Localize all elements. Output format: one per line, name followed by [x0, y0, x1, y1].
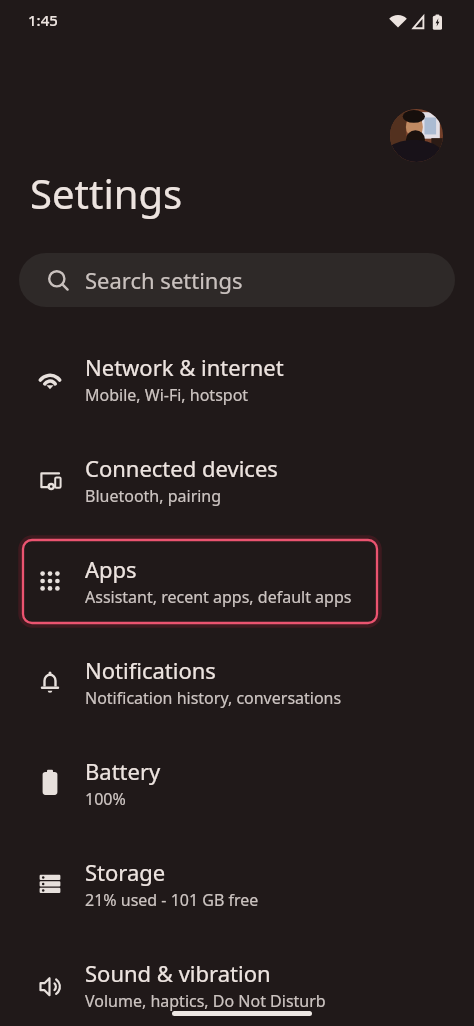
- staticText: Network & internet: [85, 352, 284, 382]
- staticText: Settings: [30, 166, 183, 220]
- button[interactable]: Apps: [0, 530, 474, 631]
- staticText: Search settings: [85, 265, 243, 295]
- staticText: Bluetooth, pairing: [85, 485, 222, 507]
- staticText: 21% used - 101 GB free: [85, 889, 259, 911]
- button[interactable]: Sound & vibration: [0, 934, 474, 1026]
- button[interactable]: Search settings: [19, 253, 455, 307]
- staticText: Battery: [85, 756, 161, 786]
- button[interactable]: Storage: [0, 833, 474, 934]
- button[interactable]: [390, 109, 443, 162]
- staticText: Assistant, recent apps, default apps: [85, 586, 352, 608]
- button[interactable]: Connected devices: [0, 429, 474, 530]
- staticText: Notification history, conversations: [85, 687, 342, 709]
- staticText: Storage: [85, 857, 166, 887]
- staticText: Mobile, Wi-Fi, hotspot: [85, 384, 249, 406]
- button[interactable]: Network & internet: [0, 328, 474, 429]
- staticText: Apps: [85, 554, 137, 584]
- button[interactable]: Notifications: [0, 631, 474, 732]
- staticText: 1:45: [28, 10, 58, 30]
- staticText: Notifications: [85, 655, 216, 685]
- staticText: 100%: [85, 788, 126, 810]
- staticText: Sound & vibration: [85, 958, 271, 988]
- button[interactable]: Battery: [0, 732, 474, 833]
- staticText: Connected devices: [85, 453, 278, 483]
- staticText: Volume, haptics, Do Not Disturb: [85, 990, 326, 1012]
